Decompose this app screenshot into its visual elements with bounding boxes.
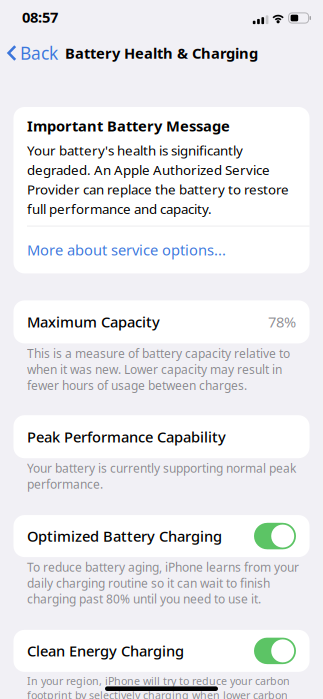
button[interactable]: Optimized Battery Charging: [13, 515, 309, 557]
staticText: 08:57: [22, 7, 58, 27]
staticText: Maximum Capacity: [27, 312, 160, 332]
staticText: This is a measure of battery capacity re…: [27, 345, 290, 393]
button[interactable]: Clean Energy Charging: [13, 630, 309, 672]
staticText: In your region, iPhone will try to reduc…: [27, 674, 290, 699]
staticText: Your battery's health is significantly d…: [27, 141, 289, 218]
staticText: Clean Energy Charging: [27, 641, 184, 661]
staticText: 78%: [268, 312, 296, 332]
staticText: To reduce battery aging, iPhone learns f…: [27, 559, 299, 607]
staticText: Your battery is currently supporting nor…: [27, 460, 296, 492]
button[interactable]: More about service options...: [13, 226, 309, 273]
button[interactable]: Back: [0, 34, 58, 72]
staticText: Important Battery Message: [27, 116, 230, 135]
staticText: Peak Performance Capability: [27, 427, 226, 446]
staticText: Battery Health & Charging: [65, 43, 258, 63]
staticText: Back: [20, 41, 58, 64]
staticText: More about service options...: [27, 240, 226, 260]
staticText: Optimized Battery Charging: [27, 526, 222, 546]
